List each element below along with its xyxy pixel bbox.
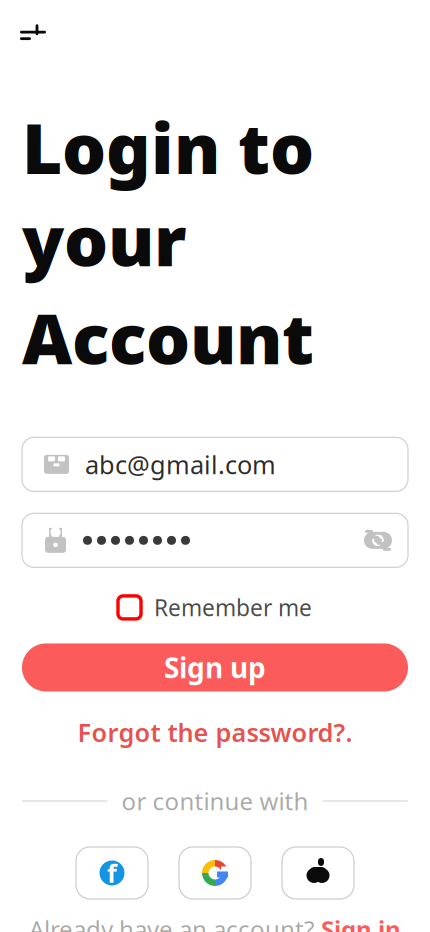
button[interactable]: Remember me <box>110 585 320 629</box>
button[interactable]: Show password <box>362 524 394 556</box>
staticText: Account <box>22 291 314 383</box>
staticText: or continue with <box>121 785 308 817</box>
button[interactable]: Sign up <box>22 643 408 691</box>
staticText: abc@gmail.com <box>85 447 276 481</box>
button[interactable]: Back <box>10 9 56 55</box>
staticText: Forgot the password?. <box>77 715 352 749</box>
staticText: Remember me <box>154 592 312 622</box>
staticText: Sign in <box>321 913 401 932</box>
button[interactable]: Continue with Apple <box>282 847 354 899</box>
button[interactable]: Forgot the password?. <box>65 709 364 755</box>
button[interactable]: Continue with Google <box>179 847 251 899</box>
staticText: Already have an account? <box>29 913 314 932</box>
button[interactable]: Already have an account? <box>19 907 411 932</box>
staticText: Sign up <box>164 649 266 686</box>
button[interactable]: Continue with Facebook <box>76 847 148 899</box>
staticText: Login to your <box>22 101 314 285</box>
staticText: f <box>107 856 117 890</box>
